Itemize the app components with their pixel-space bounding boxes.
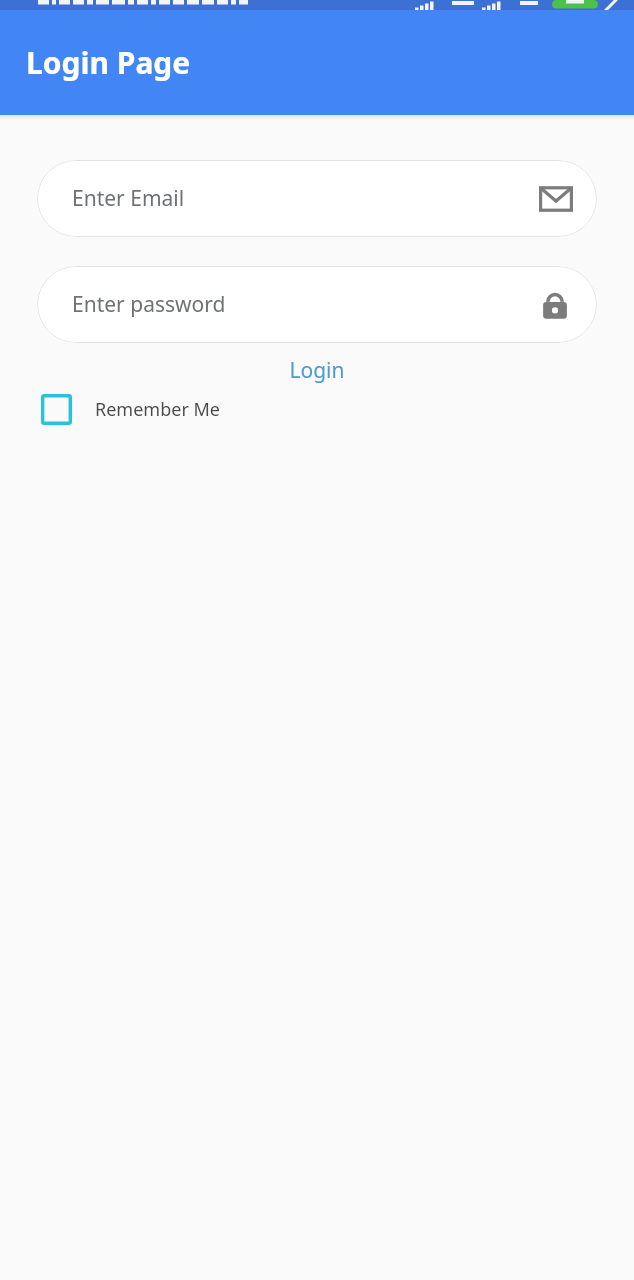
button[interactable]: Remember Me checkbox [41,394,220,425]
button[interactable]: Enter password [37,266,597,343]
staticText: Remember Me [95,397,220,422]
staticText: Enter password [72,290,537,319]
staticText: Login [289,356,345,385]
staticText: Enter Email [72,184,539,213]
button[interactable]: Enter Email [37,160,597,237]
other: Email [539,182,573,216]
button[interactable]: Login [281,354,353,387]
other: Remember Me checkbox [41,394,72,425]
staticText: Login Page [26,42,191,83]
other: Password [537,287,573,323]
